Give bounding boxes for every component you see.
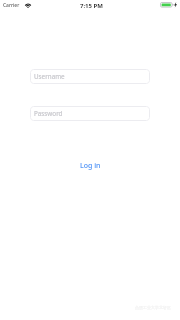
staticText: Username	[34, 72, 65, 81]
staticText: Carrier	[3, 2, 20, 9]
button[interactable]: Username	[30, 69, 150, 84]
button[interactable]: Log in	[70, 157, 111, 175]
staticText: 合肥工业大学北轩区	[135, 305, 171, 310]
staticText: Log in	[80, 161, 101, 171]
staticText: 7:15 PM	[80, 2, 103, 10]
button[interactable]: Password	[30, 106, 150, 121]
staticText: Password	[34, 109, 63, 118]
